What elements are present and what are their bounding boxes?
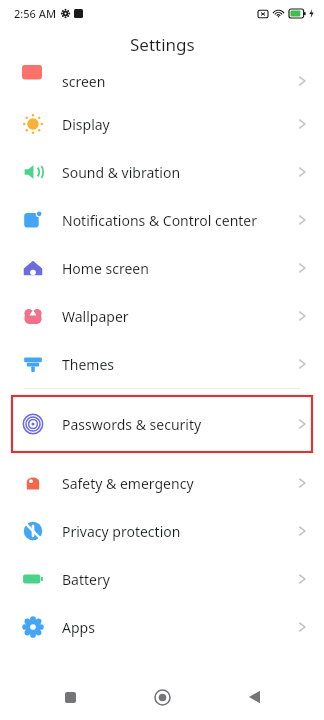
staticText: Passwords & security xyxy=(62,415,202,434)
button[interactable]: Wallpaper xyxy=(0,292,324,340)
button[interactable]: Privacy protection xyxy=(0,507,324,555)
button[interactable]: Sound & vibration xyxy=(0,148,324,196)
button[interactable]: Apps xyxy=(0,603,324,651)
staticText: Notifications & Control center xyxy=(62,211,258,230)
staticText: Battery xyxy=(62,570,110,589)
staticText: Home screen xyxy=(62,259,149,278)
staticText: Display xyxy=(62,115,110,134)
staticText: Apps xyxy=(62,618,95,637)
staticText: screen xyxy=(62,72,106,91)
button[interactable]: Notifications & Control center xyxy=(0,196,324,244)
staticText: 2:56 AM xyxy=(14,6,57,21)
staticText: Privacy protection xyxy=(62,522,181,541)
staticText: Themes xyxy=(62,355,115,374)
button[interactable]: Home xyxy=(140,675,184,719)
button[interactable]: Display xyxy=(0,100,324,148)
staticText: Safety & emergency xyxy=(62,474,194,493)
button[interactable]: Back xyxy=(232,675,276,719)
button[interactable]: Battery xyxy=(0,555,324,603)
staticText: Wallpaper xyxy=(62,307,129,326)
staticText: Sound & vibration xyxy=(62,163,181,182)
button[interactable]: Passwords & security xyxy=(12,396,312,452)
button[interactable]: Themes xyxy=(0,340,324,388)
button[interactable]: Home screen xyxy=(0,244,324,292)
button[interactable]: Safety & emergency xyxy=(0,459,324,507)
staticText: Settings xyxy=(130,33,195,56)
button[interactable]: Recent apps xyxy=(48,675,92,719)
button[interactable]: screen xyxy=(0,62,324,100)
